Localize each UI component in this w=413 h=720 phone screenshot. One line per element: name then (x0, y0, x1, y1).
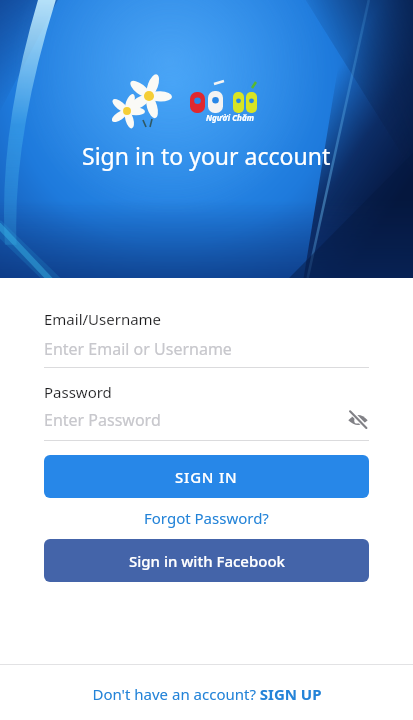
staticText: Don't have an account? SIGN UP (92, 684, 322, 704)
button[interactable] (347, 411, 369, 429)
staticText: Email/Username (44, 309, 162, 329)
staticText: SIGN IN (175, 467, 238, 487)
button[interactable]: Sign in with Facebook (44, 539, 369, 582)
button[interactable]: Don't have an account? SIGN UP (0, 684, 413, 704)
staticText: Sign in with Facebook (129, 551, 285, 571)
staticText: Người Chăm (206, 112, 254, 123)
button[interactable]: Forgot Password? (144, 508, 269, 528)
staticText: Sign in to your account (82, 140, 331, 171)
button[interactable]: SIGN IN (44, 455, 369, 498)
staticText: Enter Password (44, 409, 161, 431)
staticText: Password (44, 382, 112, 402)
staticText: Enter Email or Username (44, 338, 232, 360)
